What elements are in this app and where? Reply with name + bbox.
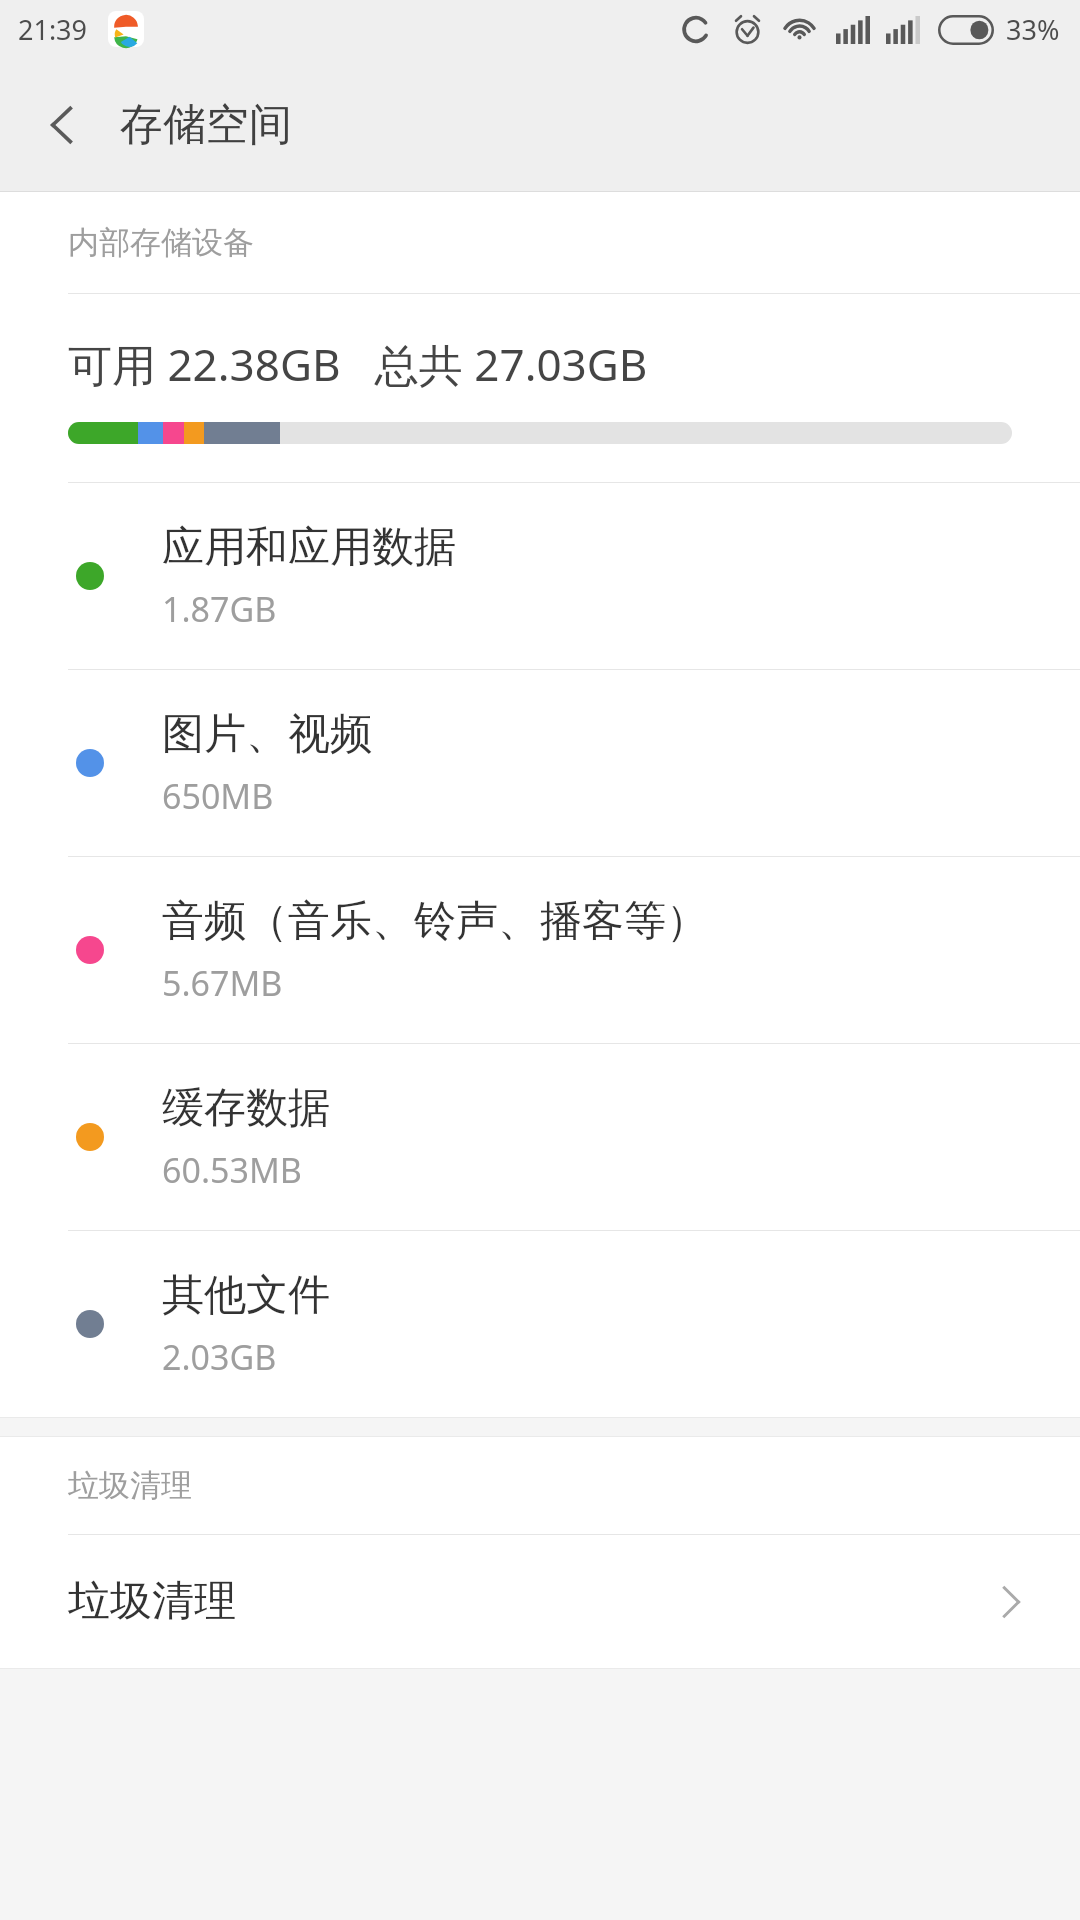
staticText: 垃圾清理 [68, 1466, 192, 1505]
staticText: 21:39 [18, 11, 88, 48]
staticText: 应用和应用数据 [162, 521, 456, 574]
staticText: 650MB [162, 773, 274, 819]
staticText: 5.67MB [162, 960, 283, 1006]
button[interactable]: Back [0, 58, 124, 191]
staticText: 图片、视频 [162, 708, 372, 761]
staticText: 2.03GB [162, 1334, 277, 1380]
staticText: 可用 22.38GB 总共 27.03GB [68, 334, 648, 394]
staticText: 33% [1006, 11, 1060, 48]
staticText: 60.53MB [162, 1147, 302, 1193]
staticText: 其他文件 [162, 1269, 330, 1322]
staticText: 1.87GB [162, 586, 277, 632]
button[interactable]: 垃圾清理 [0, 1535, 1080, 1668]
button[interactable]: 应用和应用数据 [0, 483, 1080, 669]
button[interactable]: 缓存数据 [0, 1044, 1080, 1230]
staticText: 垃圾清理 [68, 1575, 988, 1628]
staticText: 存储空间 [120, 98, 292, 152]
button[interactable]: 其他文件 [0, 1231, 1080, 1417]
staticText: 缓存数据 [162, 1082, 330, 1135]
staticText: 内部存储设备 [68, 223, 254, 262]
button[interactable]: 图片、视频 [0, 670, 1080, 856]
staticText: 音频（音乐、铃声、播客等） [162, 895, 708, 948]
button[interactable]: 音频（音乐、铃声、播客等） [0, 857, 1080, 1043]
